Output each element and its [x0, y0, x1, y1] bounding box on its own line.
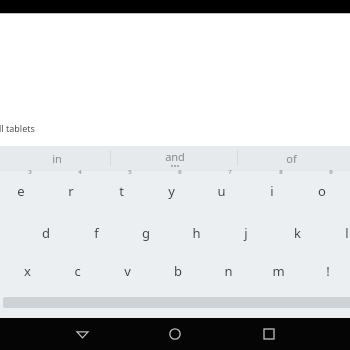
- button[interactable]: l: [322, 210, 350, 248]
- staticText: e: [17, 182, 25, 200]
- button[interactable]: 8: [247, 168, 297, 206]
- staticText: f: [94, 224, 99, 242]
- staticText: !: [326, 262, 330, 280]
- button[interactable]: Home: [155, 318, 195, 350]
- button[interactable]: and: [130, 146, 220, 170]
- staticText: 3: [28, 168, 32, 176]
- button[interactable]: c: [52, 248, 102, 286]
- staticText: 6: [178, 168, 182, 176]
- button[interactable]: 3: [0, 168, 46, 206]
- button[interactable]: 9: [297, 168, 347, 206]
- staticText: i: [270, 182, 274, 200]
- staticText: in: [52, 151, 62, 166]
- staticText: 8: [279, 168, 283, 176]
- staticText: and: [165, 149, 185, 164]
- staticText: d: [42, 224, 50, 242]
- staticText: y: [168, 182, 175, 200]
- staticText: 7: [228, 168, 232, 176]
- staticText: c: [74, 262, 81, 280]
- staticText: m: [272, 262, 285, 280]
- staticText: l: [345, 224, 349, 242]
- staticText: h: [192, 224, 201, 242]
- staticText: k: [294, 224, 301, 242]
- staticText: 4: [78, 168, 82, 176]
- staticText: j: [244, 224, 248, 242]
- staticText: 9: [329, 168, 333, 176]
- staticText: r: [68, 182, 74, 200]
- button[interactable]: in: [12, 146, 102, 170]
- button[interactable]: h: [171, 210, 221, 248]
- button[interactable]: !: [303, 248, 350, 286]
- staticText: t: [119, 182, 124, 200]
- button[interactable]: n: [203, 248, 253, 286]
- button[interactable]: 5: [96, 168, 146, 206]
- staticText: ll tablets: [0, 122, 35, 134]
- staticText: o: [318, 182, 326, 200]
- staticText: x: [24, 262, 31, 280]
- staticText: of: [286, 151, 297, 166]
- button[interactable]: m: [253, 248, 303, 286]
- button[interactable]: f: [71, 210, 121, 248]
- staticText: b: [174, 262, 182, 280]
- button[interactable]: v: [102, 248, 152, 286]
- button[interactable]: Back: [62, 318, 102, 350]
- button[interactable]: of: [246, 146, 336, 170]
- staticText: g: [142, 224, 150, 242]
- button[interactable]: 4: [46, 168, 96, 206]
- button[interactable]: Recent apps: [249, 318, 289, 350]
- button[interactable]: b: [153, 248, 203, 286]
- staticText: n: [224, 262, 233, 280]
- button[interactable]: g: [121, 210, 171, 248]
- staticText: v: [124, 262, 131, 280]
- button[interactable]: 7: [196, 168, 246, 206]
- staticText: u: [217, 182, 226, 200]
- button[interactable]: j: [221, 210, 271, 248]
- button[interactable]: x: [2, 248, 52, 286]
- button[interactable]: 6: [146, 168, 196, 206]
- staticText: 5: [128, 168, 132, 176]
- button[interactable]: k: [272, 210, 322, 248]
- button[interactable]: d: [21, 210, 71, 248]
